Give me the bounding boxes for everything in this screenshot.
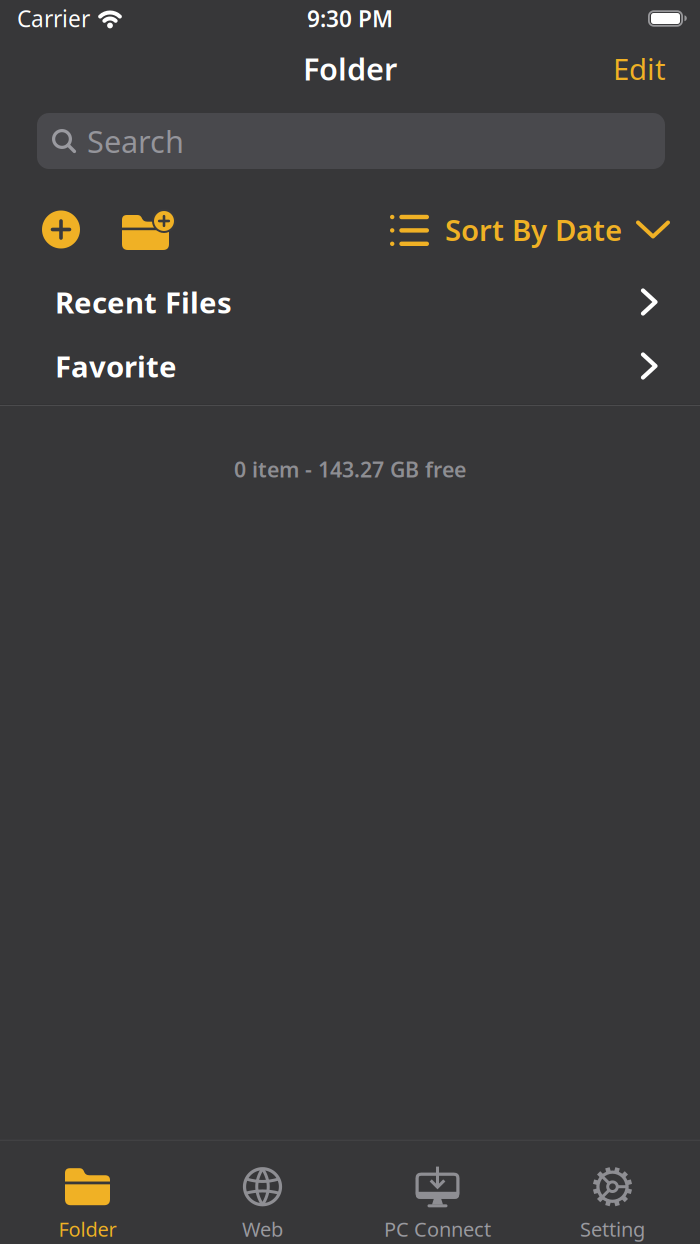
button[interactable]: Folder xyxy=(0,1164,175,1242)
staticText: Sort By Date xyxy=(445,210,622,249)
staticText: Carrier xyxy=(17,3,90,33)
button[interactable]: New Folder xyxy=(122,209,176,250)
staticText: Favorite xyxy=(55,346,177,385)
staticText: Recent Files xyxy=(55,282,232,321)
button[interactable]: Add xyxy=(42,210,80,248)
staticText: Setting xyxy=(580,1216,645,1242)
staticText: Folder xyxy=(303,48,397,89)
button[interactable]: Recent Files xyxy=(0,270,700,334)
button[interactable]: Favorite xyxy=(0,334,700,398)
staticText: 0 item - 143.27 GB free xyxy=(234,455,466,483)
staticText: Edit xyxy=(613,49,666,88)
button[interactable]: Sort By Date xyxy=(390,210,670,249)
button[interactable]: Web xyxy=(175,1164,350,1242)
staticText: Web xyxy=(242,1216,283,1242)
staticText: Folder xyxy=(58,1216,116,1242)
staticText: 9:30 PM xyxy=(307,3,393,33)
button[interactable]: PC Connect xyxy=(350,1164,525,1242)
staticText: Search xyxy=(87,121,184,161)
button[interactable]: Search xyxy=(37,113,665,169)
staticText: PC Connect xyxy=(384,1216,491,1242)
button[interactable]: Edit xyxy=(613,49,666,88)
button[interactable]: Setting xyxy=(525,1164,700,1242)
